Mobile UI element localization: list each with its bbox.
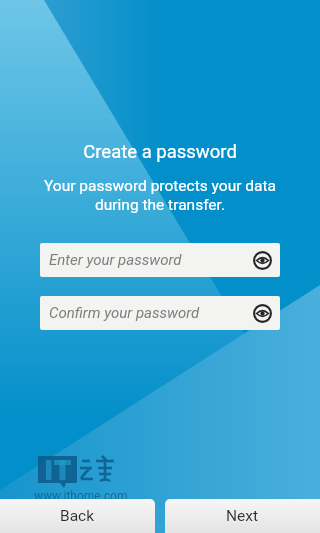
staticText: Create a password — [0, 141, 320, 163]
staticText: Back — [60, 507, 95, 525]
staticText: Confirm your password — [49, 304, 200, 322]
staticText: Next — [226, 507, 259, 525]
staticText: www.ithome.com — [34, 489, 128, 503]
button[interactable]: Show password — [253, 251, 272, 270]
button[interactable]: Enter your password — [40, 243, 280, 277]
button[interactable]: Back — [0, 499, 155, 533]
staticText: Your password protects your data during … — [0, 177, 320, 214]
button[interactable]: Confirm your password — [40, 296, 280, 330]
staticText: Enter your password — [49, 251, 182, 269]
button[interactable]: Show password — [253, 304, 272, 323]
button[interactable]: Next — [165, 499, 320, 533]
